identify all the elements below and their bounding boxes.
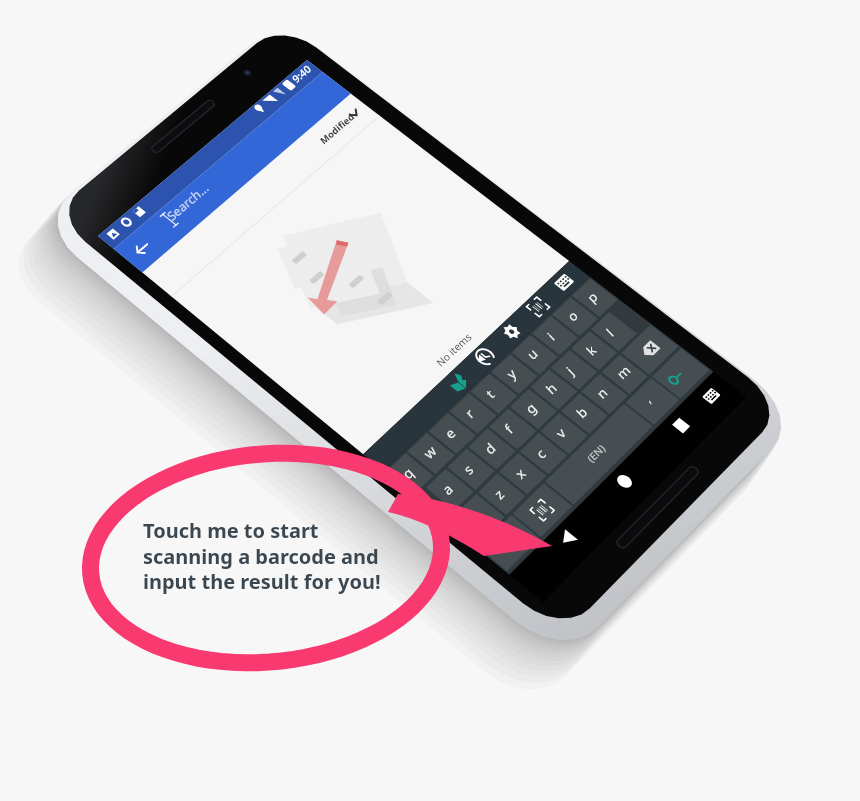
button[interactable]: Touch me to start scanning a barcode bbox=[0, 0, 860, 801]
